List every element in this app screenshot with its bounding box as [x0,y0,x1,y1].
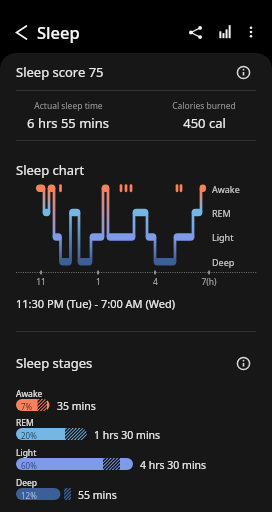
button[interactable]: Sleep stages [16,352,254,374]
staticText: Calories burned [172,100,236,112]
staticText: 12% [21,490,37,501]
button[interactable]: More options [233,14,269,50]
staticText: Light [16,447,37,459]
staticText: Deep [212,256,235,268]
staticText: Sleep score 75 [16,63,104,81]
button[interactable]: Share [177,14,213,50]
button[interactable]: REM [0,417,272,441]
staticText: Light [212,231,234,243]
staticText: REM [212,207,231,219]
staticText: Deep [16,477,38,489]
staticText: 7(h) [201,276,217,288]
staticText: 11 [36,276,46,288]
button[interactable]: Deep [0,477,272,501]
staticText: 35 mins [57,399,96,411]
staticText: 20% [21,430,37,441]
staticText: 4 hrs 30 mins [140,458,207,470]
button[interactable]: Information [232,61,254,83]
button[interactable]: Awake [0,388,272,412]
staticText: 55 mins [78,488,117,500]
staticText: 1 [96,276,101,288]
staticText: Awake [16,388,43,400]
staticText: REM [16,417,34,429]
button[interactable]: Information [232,352,254,374]
staticText: 7% [21,401,33,412]
staticText: Awake [212,183,240,195]
staticText: Sleep stages [16,354,93,372]
button[interactable]: Light [0,447,272,471]
button[interactable]: Navigate up [3,14,39,50]
staticText: 1 hrs 30 mins [94,428,161,440]
staticText: Sleep chart [16,161,85,179]
button[interactable]: Trends [207,14,243,50]
staticText: 6 hrs 55 mins [27,114,109,132]
staticText: 60% [21,460,37,471]
staticText: 450 cal [183,114,226,132]
staticText: 11:30 PM (Tue) - 7:00 AM (Wed) [16,296,176,311]
staticText: Actual sleep time [34,100,103,112]
staticText: 4 [153,276,158,288]
staticText: Sleep [37,21,80,43]
